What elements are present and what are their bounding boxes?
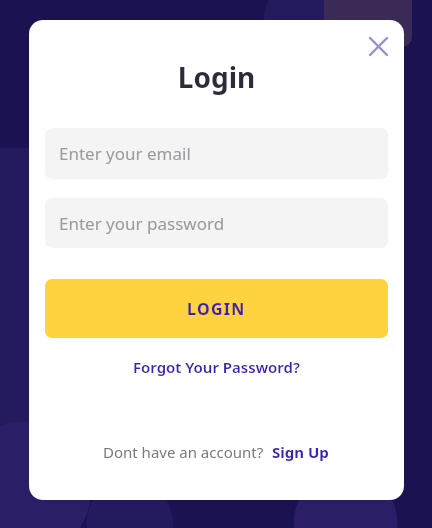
- staticText: LOGIN: [187, 298, 246, 320]
- staticText: Sign Up: [272, 442, 329, 462]
- button[interactable]: LOGIN: [45, 279, 388, 338]
- button[interactable]: Enter your password: [45, 198, 388, 248]
- staticText: Forgot Your Password?: [133, 357, 300, 377]
- staticText: Enter your password: [59, 212, 225, 235]
- button[interactable]: Sign Up: [270, 440, 331, 464]
- button[interactable]: Forgot Your Password?: [123, 352, 310, 382]
- staticText: Enter your email: [59, 142, 191, 165]
- button[interactable]: Close: [358, 26, 398, 66]
- staticText: Dont have an account?: [103, 442, 264, 462]
- button[interactable]: Enter your email: [45, 128, 388, 179]
- staticText: Login: [29, 58, 404, 96]
